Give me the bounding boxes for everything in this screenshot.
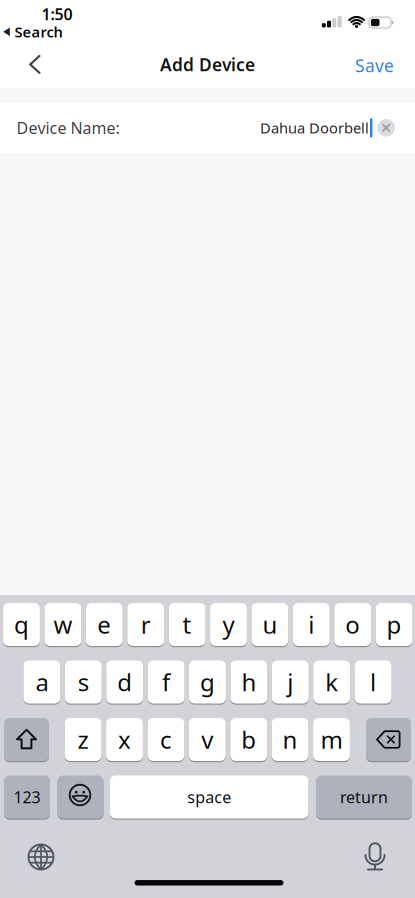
staticText: w [53,609,72,640]
staticText: Search [14,22,62,42]
staticText: l [370,666,376,698]
staticText: f [162,666,170,698]
staticText: 123 [13,786,40,808]
staticText: r [141,609,151,640]
staticText: h [241,666,256,698]
staticText: return [340,786,388,808]
staticText: y [222,609,234,640]
staticText: a [35,666,48,698]
staticText: space [187,786,231,808]
staticText: 1:50 [41,3,72,25]
staticText: b [241,724,256,755]
staticText: Device Name: [17,117,120,138]
staticText: k [325,666,338,698]
staticText: g [200,666,215,698]
staticText: Add Device [160,53,255,76]
staticText: e [97,609,111,640]
staticText: u [262,609,277,640]
staticText: t [183,609,192,640]
staticText: j [287,666,293,698]
staticText: v [201,724,213,755]
staticText: n [283,724,298,755]
staticText: d [117,666,132,698]
staticText: m [320,724,342,755]
staticText: c [160,724,172,755]
staticText: p [387,609,402,640]
staticText: s [78,666,89,698]
staticText: i [308,609,314,640]
staticText: z [78,724,89,755]
staticText: o [345,609,360,640]
staticText: x [118,724,131,755]
staticText: q [14,609,29,640]
staticText: Dahua Doorbell [260,118,369,138]
staticText: Save [355,54,394,77]
